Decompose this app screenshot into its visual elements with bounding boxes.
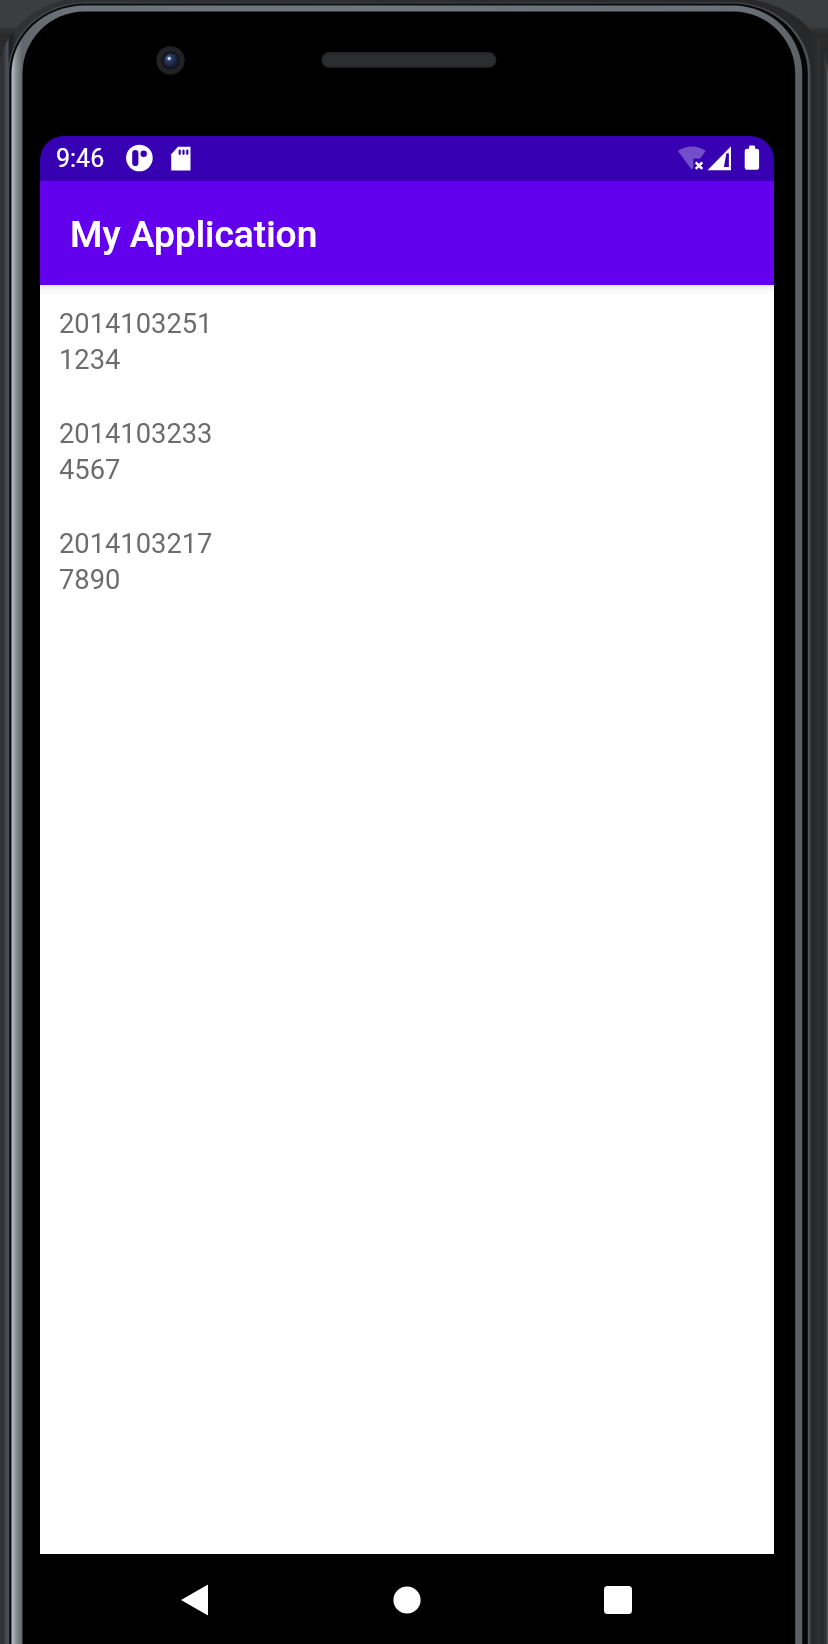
button[interactable]: 2014103251 bbox=[40, 302, 774, 406]
button[interactable]: Recent apps bbox=[592, 1577, 644, 1629]
button[interactable]: 2014103233 bbox=[40, 412, 774, 516]
staticText: 2014103251 bbox=[59, 308, 213, 340]
staticText: 9:46 bbox=[56, 144, 105, 173]
staticText: 2014103233 bbox=[59, 418, 213, 450]
staticText: 7890 bbox=[59, 564, 121, 596]
button[interactable]: Back bbox=[168, 1577, 220, 1629]
staticText: My Application bbox=[70, 213, 318, 256]
button[interactable]: Home bbox=[381, 1577, 433, 1629]
staticText: 2014103217 bbox=[59, 528, 213, 560]
button[interactable]: 2014103217 bbox=[40, 522, 774, 626]
staticText: 4567 bbox=[59, 454, 121, 486]
staticText: 1234 bbox=[59, 344, 121, 376]
